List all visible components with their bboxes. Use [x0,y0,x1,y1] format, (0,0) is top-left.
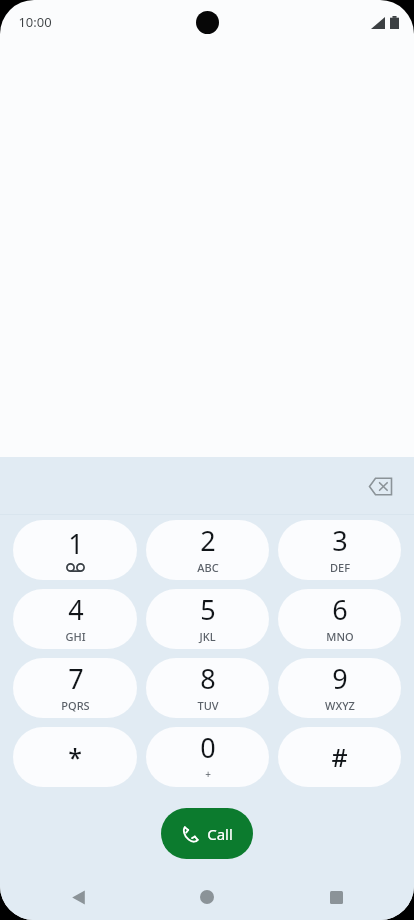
button[interactable]: 6 [278,589,401,649]
button[interactable]: # [278,727,401,787]
button[interactable]: 1 [13,520,137,580]
button[interactable]: Home [187,877,227,917]
button[interactable]: 9 [278,658,401,718]
button[interactable]: 8 [146,658,269,718]
staticText: TUV [197,698,219,713]
staticText: 9 [332,660,348,697]
staticText: DEF [330,560,350,575]
button[interactable]: 0 [146,727,269,787]
staticText: WXYZ [325,698,355,713]
button[interactable]: * [13,727,137,787]
staticText: 7 [68,660,84,697]
staticText: ABC [197,560,219,575]
staticText: 4 [68,591,84,628]
staticText: JKL [199,629,216,644]
staticText: Call [207,824,233,844]
staticText: 2 [200,522,216,559]
button[interactable]: Recent apps [316,877,356,917]
staticText: 10:00 [18,13,52,31]
staticText: + [205,767,211,781]
staticText: # [331,740,348,774]
staticText: 1 [68,525,84,562]
button[interactable]: 2 [146,520,269,580]
button[interactable]: 3 [278,520,401,580]
button[interactable]: 5 [146,589,269,649]
staticText: MNO [326,629,354,644]
button[interactable]: Backspace [358,464,402,508]
button[interactable]: 4 [13,589,137,649]
staticText: 3 [332,522,348,559]
staticText: 5 [200,591,216,628]
staticText: 6 [332,591,348,628]
staticText: 0 [200,729,216,766]
staticText: GHI [65,629,86,644]
button[interactable]: Call [161,808,253,859]
staticText: * [68,740,82,774]
button[interactable]: 7 [13,658,137,718]
button[interactable]: Back [58,877,98,917]
staticText: PQRS [61,698,90,713]
staticText: 8 [200,660,216,697]
